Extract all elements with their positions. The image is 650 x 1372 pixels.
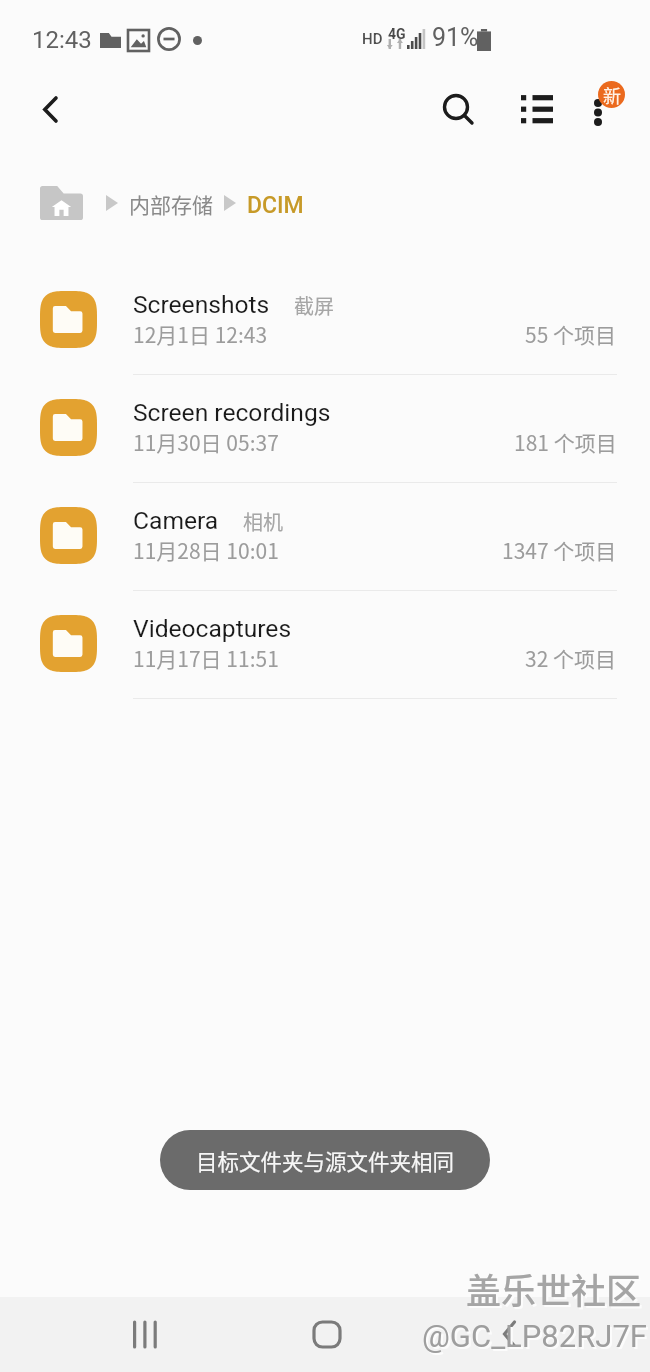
button[interactable]: Videocaptures — [0, 591, 650, 699]
button[interactable]: Back — [17, 77, 81, 141]
staticText: 12:43 — [32, 26, 92, 54]
button[interactable]: View as list — [505, 77, 569, 141]
staticText: 4G — [388, 26, 406, 42]
button[interactable]: More options — [568, 77, 630, 139]
button[interactable]: Camera — [0, 483, 650, 591]
staticText: 盖乐世社区 — [466, 1263, 642, 1314]
staticText: 11月30日 05:37 — [133, 427, 279, 457]
staticText: HD — [362, 30, 383, 48]
button[interactable]: 内部存储 — [129, 189, 213, 219]
staticText: 181 个项目 — [514, 427, 617, 457]
staticText: 内部存储 — [129, 189, 213, 219]
button[interactable]: Recent apps — [110, 1299, 180, 1369]
staticText: 1347 个项目 — [502, 535, 617, 565]
button[interactable]: Home — [292, 1299, 362, 1369]
staticText: 11月28日 10:01 — [133, 535, 279, 565]
staticText: 32 个项目 — [525, 643, 617, 673]
button[interactable]: Screen recordings — [0, 375, 650, 483]
button[interactable]: Back — [474, 1299, 544, 1369]
staticText: @GC_LP82RJ7F — [424, 1320, 649, 1356]
button[interactable]: Search — [426, 77, 490, 141]
staticText: 91% — [432, 23, 479, 52]
staticText: 12月1日 12:43 — [133, 319, 268, 349]
button[interactable]: Screenshots — [0, 267, 650, 375]
staticText: 截屏 — [294, 291, 334, 320]
staticText: Screen recordings — [133, 398, 331, 427]
staticText: 相机 — [243, 507, 283, 536]
staticText: DCIM — [247, 192, 304, 219]
staticText: 新 — [603, 82, 621, 108]
staticText: Camera — [133, 506, 219, 535]
staticText: 盖乐世社区 — [468, 1265, 644, 1316]
staticText: @GC_LP82RJ7F — [422, 1318, 647, 1354]
staticText: Videocaptures — [133, 614, 292, 643]
button[interactable]: Internal storage root — [40, 186, 83, 220]
staticText: 55 个项目 — [525, 319, 617, 349]
staticText: 11月17日 11:51 — [133, 643, 279, 673]
button[interactable]: DCIM — [247, 192, 304, 219]
staticText: Screenshots — [133, 290, 270, 319]
staticText: 目标文件夹与源文件夹相同 — [196, 1145, 455, 1176]
